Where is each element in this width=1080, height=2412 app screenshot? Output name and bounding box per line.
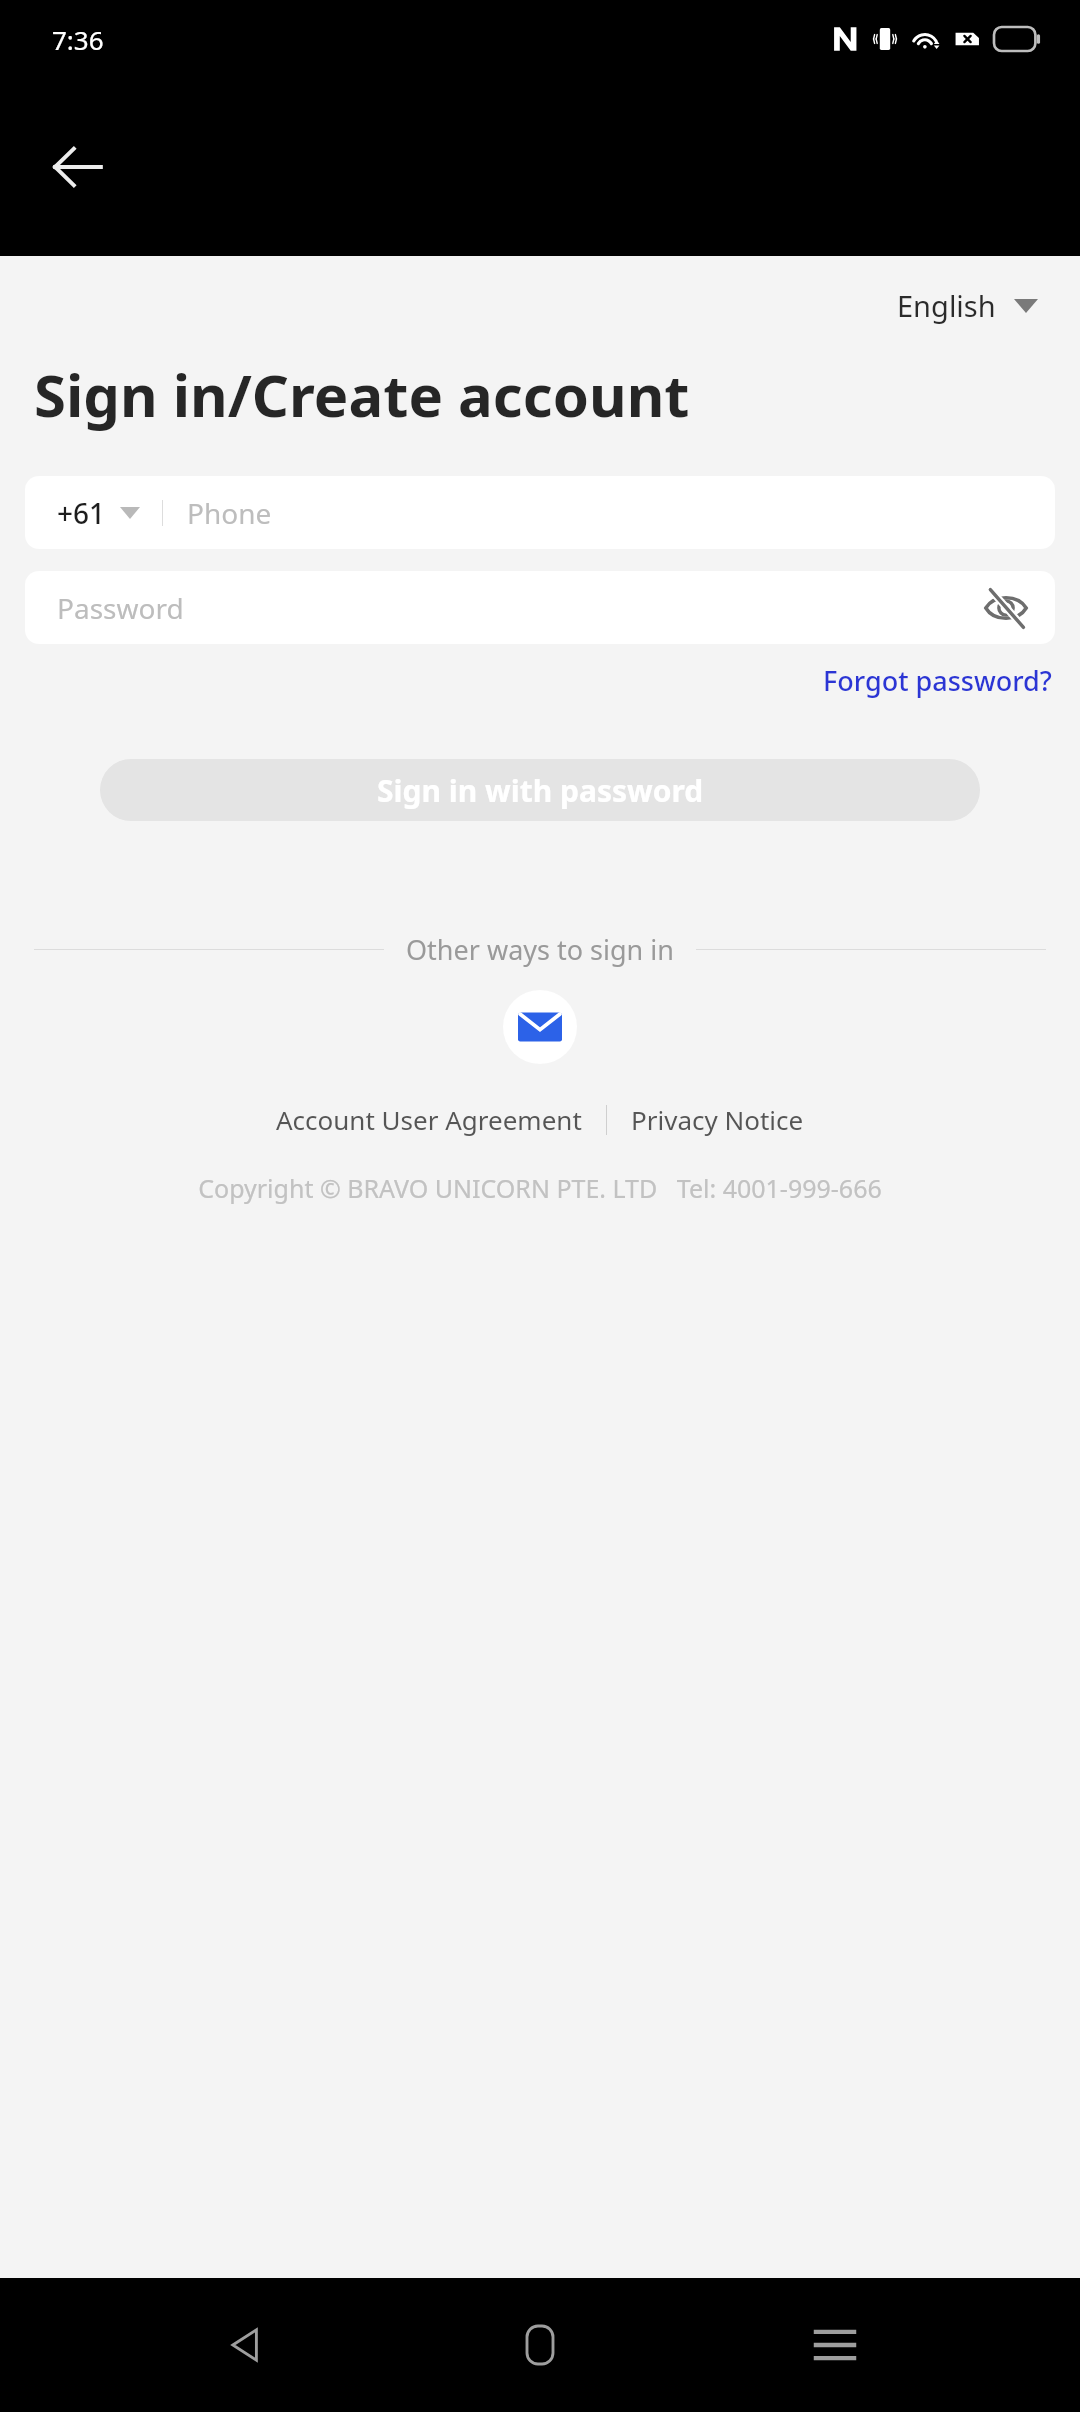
staticText: Phone — [187, 494, 272, 532]
staticText: 7:36 — [52, 22, 104, 57]
button[interactable]: English — [885, 278, 1050, 333]
staticText: Sign in with password — [377, 770, 704, 811]
button[interactable]: Back — [195, 2295, 295, 2395]
staticText: Sign in/Create account — [34, 355, 690, 434]
staticText: Copyright © BRAVO UNICORN PTE. LTD Tel: … — [0, 1171, 1080, 1205]
staticText: +61 — [57, 494, 106, 532]
button[interactable]: Sign in with email — [503, 990, 577, 1064]
staticText: Password — [57, 589, 975, 627]
button[interactable]: +61 — [25, 476, 1055, 549]
button[interactable]: Back — [30, 119, 126, 215]
button[interactable]: Home — [490, 2295, 590, 2395]
button[interactable]: Account User Agreement — [270, 1098, 588, 1141]
button[interactable]: Forgot password? — [817, 658, 1058, 703]
button[interactable]: Show password — [975, 577, 1037, 639]
button[interactable]: Sign in with password — [100, 759, 980, 821]
button[interactable]: Password — [25, 571, 1055, 644]
staticText: Other ways to sign in — [406, 931, 674, 968]
staticText: English — [897, 286, 996, 325]
button[interactable]: Recent apps — [785, 2295, 885, 2395]
button[interactable]: Privacy Notice — [625, 1098, 810, 1141]
